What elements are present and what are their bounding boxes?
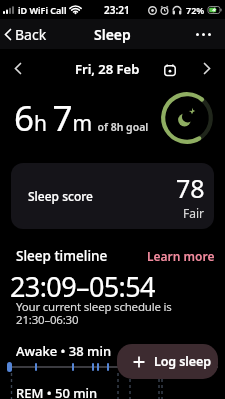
staticText: Awake • 38 min: [16, 342, 112, 360]
staticText: Fri, 28 Feb: [75, 60, 140, 78]
button[interactable]: Learn more: [147, 248, 215, 264]
staticText: 23:09–05:54: [10, 268, 155, 305]
staticText: iD WiFi Call: [18, 4, 67, 16]
button[interactable]: Sleep score: [11, 163, 214, 229]
staticText: Sleep: [94, 25, 131, 44]
staticText: Learn more: [147, 248, 215, 264]
staticText: Your current sleep schedule is 21:30–06:…: [16, 299, 172, 328]
staticText: Sleep timeline: [16, 247, 108, 265]
staticText: Back: [15, 25, 47, 44]
staticText: Sleep score: [28, 188, 93, 204]
staticText: Fair: [183, 205, 205, 221]
button[interactable]: [204, 63, 210, 74]
staticText: 6h 7m of 8h goal: [14, 94, 149, 142]
button[interactable]: Back: [5, 25, 47, 44]
staticText: Log sleep: [154, 353, 211, 370]
button[interactable]: Log sleep: [117, 344, 218, 379]
staticText: REM • 50 min: [16, 384, 98, 399]
staticText: 78: [176, 171, 205, 205]
button[interactable]: [196, 33, 211, 36]
staticText: 72%: [186, 4, 205, 16]
button[interactable]: [164, 64, 176, 76]
button[interactable]: [15, 63, 21, 74]
staticText: 23:21: [104, 3, 130, 17]
